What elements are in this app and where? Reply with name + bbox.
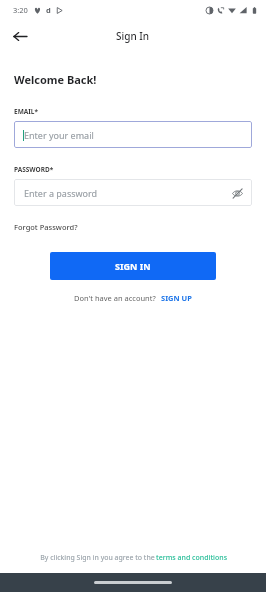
staticText: d [46,5,51,15]
staticText: terms and conditions [156,553,228,563]
button[interactable]: Back [8,24,32,48]
button[interactable]: terms and conditions [156,553,228,563]
staticText: SIGN UP [161,293,192,303]
staticText: Enter a password [24,187,98,199]
staticText: 3:20 [13,5,28,15]
staticText: Welcome Back! [14,72,97,87]
staticText: SIGN IN [115,260,151,272]
staticText: Enter your email [24,129,94,141]
staticText: By clicking Sign in you agree to the [39,553,156,563]
button[interactable]: SIGN UP [161,293,192,303]
staticText: Sign In [116,29,150,43]
button[interactable]: Forgot Password? [14,222,78,232]
staticText: Don't have an account? [74,293,156,303]
button[interactable]: Enter a password [14,179,252,206]
staticText: PASSWORD* [14,165,54,174]
button[interactable]: SIGN IN [50,252,216,280]
staticText: EMAIL* [14,107,38,116]
button[interactable]: Enter your email [14,121,252,148]
button[interactable]: Show password [228,184,246,202]
